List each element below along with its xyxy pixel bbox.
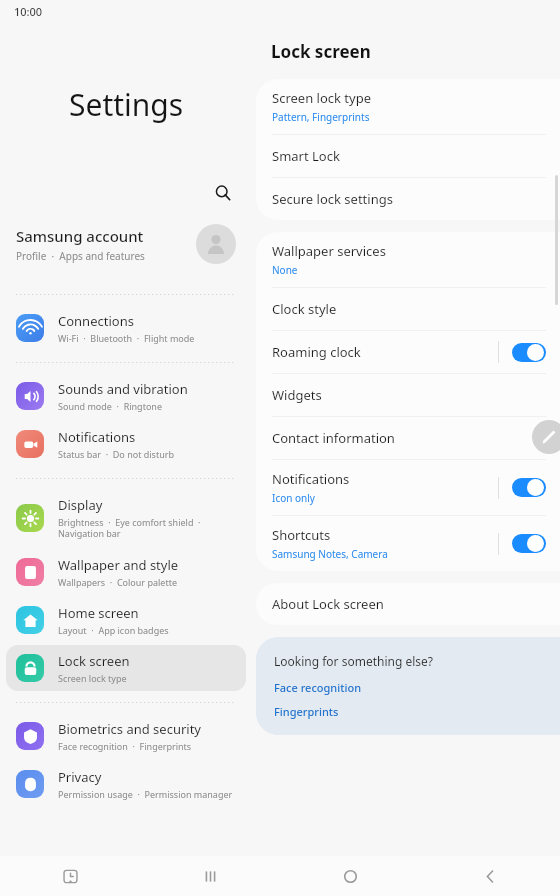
staticText: Wallpaper services <box>272 242 386 260</box>
button[interactable]: Fingerprints <box>274 704 339 719</box>
staticText: Roaming clock <box>272 343 361 361</box>
staticText: Screen lock type <box>272 89 371 107</box>
staticText: Smart Lock <box>272 147 340 165</box>
staticText: Secure lock settings <box>272 190 393 208</box>
staticText: Samsung Notes, Camera <box>272 547 388 561</box>
staticText: Face recognition <box>274 680 362 695</box>
button[interactable]: Clock style <box>256 288 560 330</box>
staticText: About Lock screen <box>272 595 384 613</box>
button[interactable]: Edit <box>532 420 560 454</box>
button[interactable]: Screenshot <box>0 856 140 896</box>
staticText: Face recognition · Fingerprints <box>58 740 192 752</box>
button[interactable]: Home <box>280 856 420 896</box>
button[interactable] <box>512 343 546 362</box>
staticText: None <box>272 263 298 277</box>
staticText: Pattern, Fingerprints <box>272 110 370 124</box>
staticText: Notifications <box>58 428 136 446</box>
button[interactable]: Wallpaper and style <box>6 549 246 595</box>
button[interactable]: Face recognition <box>274 680 362 695</box>
staticText: Icon only <box>272 491 315 505</box>
staticText: Settings <box>69 84 184 125</box>
staticText: Brightness · Eye comfort shield · Naviga… <box>58 516 201 540</box>
button[interactable]: Connections <box>6 305 246 351</box>
button[interactable]: Display <box>6 489 246 547</box>
staticText: Privacy <box>58 768 102 786</box>
staticText: Display <box>58 496 103 514</box>
button[interactable]: Samsung account <box>0 215 252 273</box>
button[interactable]: Back <box>420 856 560 896</box>
button[interactable]: Wallpaper services <box>256 232 560 287</box>
button[interactable]: Shortcuts <box>256 516 560 571</box>
staticText: Notifications <box>272 470 350 488</box>
button[interactable]: Recents <box>140 856 280 896</box>
button[interactable]: Search <box>208 178 238 208</box>
staticText: 10:00 <box>14 4 43 19</box>
staticText: Sounds and vibration <box>58 380 188 398</box>
staticText: Lock screen <box>271 40 371 63</box>
button[interactable]: Privacy <box>6 761 246 807</box>
button[interactable]: Lock screen <box>6 645 246 691</box>
staticText: Layout · App icon badges <box>58 624 169 636</box>
button[interactable]: About Lock screen <box>256 583 560 625</box>
staticText: Samsung account <box>16 226 144 246</box>
staticText: Screen lock type <box>58 672 127 684</box>
staticText: Contact information <box>272 429 395 447</box>
staticText: Widgets <box>272 386 322 404</box>
staticText: Wallpapers · Colour palette <box>58 576 177 588</box>
staticText: Home screen <box>58 604 139 622</box>
button[interactable]: Notifications <box>6 421 246 467</box>
staticText: Lock screen <box>58 652 130 670</box>
staticText: Biometrics and security <box>58 720 202 738</box>
button[interactable] <box>512 534 546 553</box>
staticText: Connections <box>58 312 134 330</box>
staticText: Wi-Fi · Bluetooth · Flight mode <box>58 332 195 344</box>
button[interactable]: Smart Lock <box>256 135 560 177</box>
staticText: Clock style <box>272 300 337 318</box>
button[interactable]: Widgets <box>256 374 560 416</box>
staticText: Shortcuts <box>272 526 331 544</box>
staticText: Sound mode · Ringtone <box>58 400 162 412</box>
button[interactable]: Screen lock type <box>256 79 560 134</box>
button[interactable]: Notifications <box>256 460 560 515</box>
staticText: Looking for something else? <box>274 653 434 669</box>
button[interactable] <box>512 478 546 497</box>
button[interactable]: Sounds and vibration <box>6 373 246 419</box>
staticText: Status bar · Do not disturb <box>58 448 174 460</box>
staticText: Permission usage · Permission manager <box>58 788 233 800</box>
staticText: Wallpaper and style <box>58 556 179 574</box>
button[interactable]: Secure lock settings <box>256 178 560 220</box>
button[interactable]: Contact information <box>256 417 560 459</box>
staticText: Fingerprints <box>274 704 339 719</box>
button[interactable]: Home screen <box>6 597 246 643</box>
staticText: Profile · Apps and features <box>16 249 145 263</box>
button[interactable]: Roaming clock <box>256 331 560 373</box>
button[interactable]: Biometrics and security <box>6 713 246 759</box>
